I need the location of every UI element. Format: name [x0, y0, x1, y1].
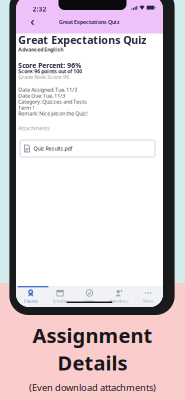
- staticText: Great Expectations Quiz: [59, 18, 120, 25]
- staticText: Attachments: [18, 125, 50, 132]
- staticText: Date Due: Tue, 11/3: [18, 92, 65, 99]
- button[interactable]: Attendance: [104, 286, 134, 307]
- staticText: Score: 96 points out of 100: [18, 68, 82, 75]
- staticText: Assignment: [32, 322, 152, 349]
- staticText: Score Percent: 96%: [18, 61, 81, 70]
- staticText: Term 1: [18, 104, 35, 111]
- staticText: Details: [57, 350, 127, 376]
- staticText: Grade Book Score: 96: [18, 73, 69, 81]
- staticText: Classes: [24, 298, 38, 303]
- button[interactable]: Back: [27, 17, 38, 28]
- staticText: Attendance: [109, 298, 128, 303]
- staticText: Date Assigned: Tue, 11/3: [18, 86, 77, 93]
- button[interactable]: Schedule: [45, 286, 75, 307]
- staticText: More: [143, 298, 153, 303]
- button[interactable]: More: [134, 286, 163, 307]
- staticText: Remark: Nice job on the Quiz!: [18, 110, 87, 117]
- button[interactable]: Quiz Results.pdf: [20, 140, 155, 157]
- staticText: Schedule: [53, 298, 68, 303]
- staticText: Category: Quizzes and Tests: [18, 98, 87, 105]
- button[interactable]: Classes: [16, 286, 45, 307]
- staticText: Advanced English: [18, 46, 63, 53]
- staticText: 2:32: [32, 5, 46, 13]
- staticText: Tasks: [84, 298, 94, 303]
- button[interactable]: Tasks: [75, 286, 104, 307]
- staticText: Great Expectations Quiz: [18, 33, 146, 47]
- staticText: (Even download attachments): [29, 381, 156, 393]
- staticText: Quiz Results.pdf: [33, 145, 72, 152]
